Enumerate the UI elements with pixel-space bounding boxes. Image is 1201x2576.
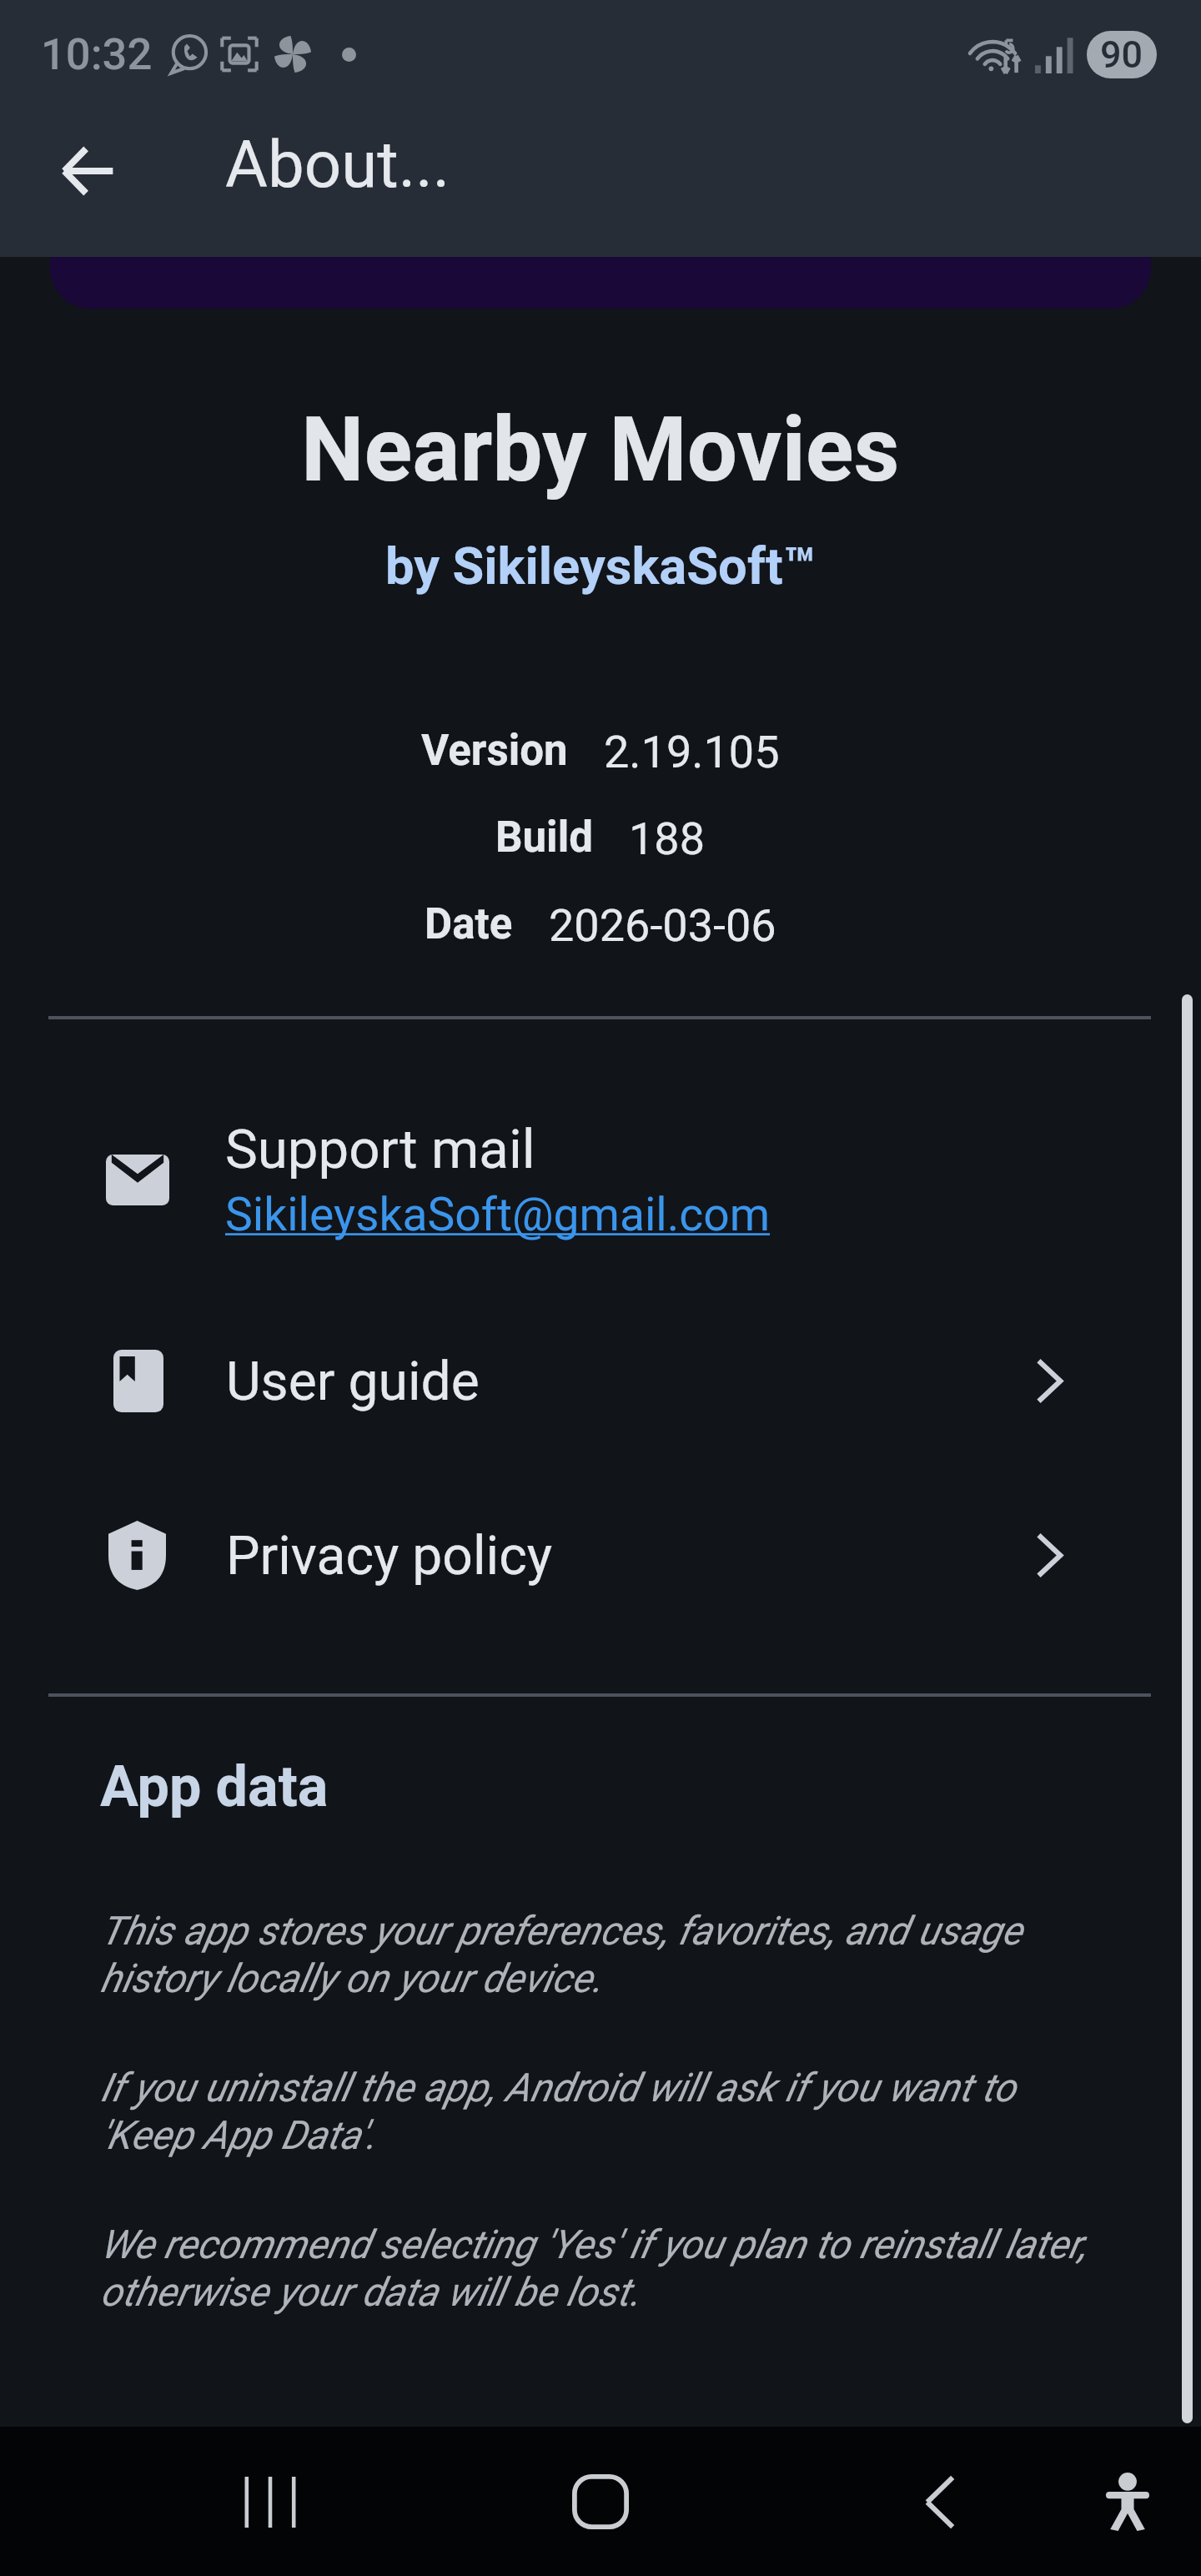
staticText: This app stores your preferences, favori… xyxy=(100,1908,1105,2002)
button[interactable]: Privacy policy xyxy=(0,1507,1201,1603)
staticText: 90 xyxy=(1100,33,1143,77)
staticText: by SikileyskaSoft™ xyxy=(385,536,816,596)
staticText: If you uninstall the app, Android will a… xyxy=(100,2065,1105,2159)
staticText: 10:32 xyxy=(41,28,153,80)
staticText: 2.19.105 xyxy=(604,726,780,778)
staticText: About... xyxy=(225,127,450,203)
staticText: User guide xyxy=(226,1350,480,1412)
staticText: 2026-03-06 xyxy=(549,899,776,952)
staticText: Privacy policy xyxy=(226,1524,553,1587)
staticText: SikileyskaSoft@gmail.com xyxy=(225,1188,771,1242)
button[interactable]: Back xyxy=(28,111,148,231)
staticText: Support mail xyxy=(225,1117,535,1181)
button[interactable]: User guide xyxy=(0,1335,1201,1427)
staticText: Date xyxy=(425,899,513,949)
button[interactable]: Accessibility xyxy=(1068,2442,1188,2562)
button[interactable]: Back xyxy=(880,2442,1000,2562)
staticText: We recommend selecting 'Yes' if you plan… xyxy=(100,2221,1105,2316)
staticText: Build xyxy=(495,813,593,863)
staticText: Nearby Movies xyxy=(301,398,900,502)
staticText: Version xyxy=(421,726,568,776)
button[interactable]: Support mail xyxy=(0,1109,1201,1250)
staticText: App data xyxy=(100,1753,329,1820)
button[interactable]: Recents xyxy=(210,2442,330,2562)
staticText: 188 xyxy=(629,813,706,865)
button[interactable]: Home xyxy=(540,2442,661,2562)
